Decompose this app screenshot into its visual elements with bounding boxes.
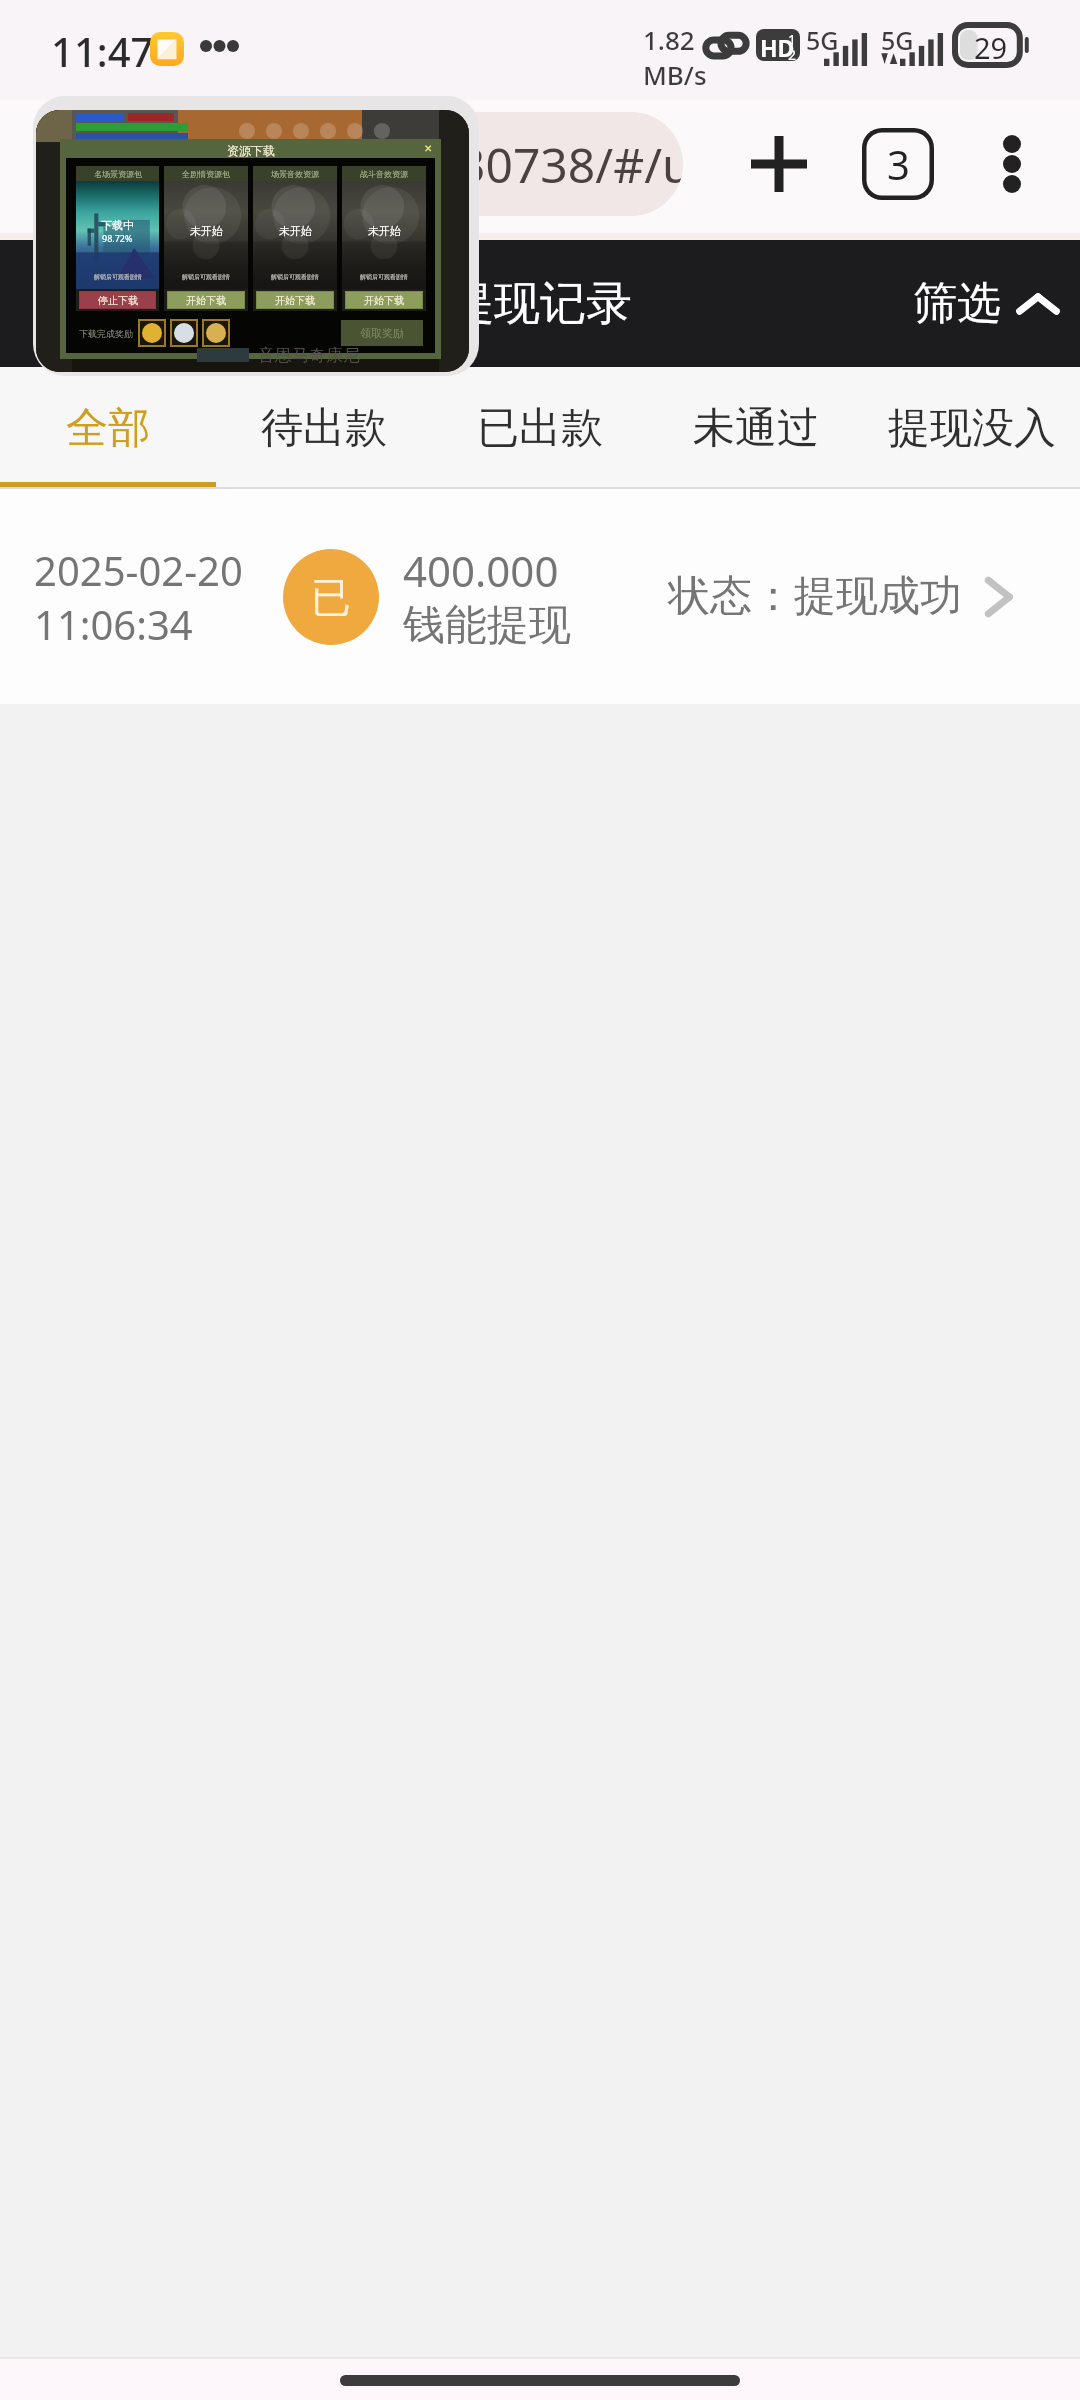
button[interactable]: 2025-02-20 <box>0 489 1080 704</box>
button[interactable]: Floating game window <box>33 96 479 376</box>
staticText: 解锁后可观看剧情 <box>94 273 142 281</box>
staticText: 3 <box>887 137 910 191</box>
staticText: 全部 <box>66 402 150 455</box>
staticText: 钱能提现 <box>403 599 571 652</box>
button[interactable]: 全部 <box>0 367 216 489</box>
staticText: 音恩马奇康尼 <box>258 345 360 366</box>
button[interactable]: 已出款 <box>432 367 648 489</box>
staticText: 待出款 <box>261 402 387 455</box>
staticText: HD <box>760 32 795 63</box>
staticText: 解锁后可观看剧情 <box>271 273 319 281</box>
staticText: 1.82 <box>643 22 695 57</box>
staticText: 筛选 <box>913 276 1001 331</box>
staticText: 1 <box>788 30 797 49</box>
staticText: 名场景资源包 <box>94 169 142 179</box>
staticText: 未开始 <box>190 224 223 238</box>
staticText: 已 <box>311 572 351 622</box>
staticText: 11:06:34 <box>34 597 193 651</box>
button[interactable]: New tab <box>735 120 823 208</box>
staticText: 状态：提现成功 <box>668 570 962 623</box>
staticText: 资源下载 <box>227 143 275 158</box>
staticText: 战斗音效资源 <box>360 169 408 179</box>
staticText: 2025-02-20 <box>34 543 243 597</box>
button[interactable]: 30738/#/u <box>90 112 683 216</box>
staticText: 30738/#/u <box>458 132 683 197</box>
staticText: 解锁后可观看剧情 <box>360 273 408 281</box>
staticText: 5G <box>881 23 914 57</box>
staticText: 开始下载 <box>364 294 404 307</box>
staticText: 400.000 <box>403 542 559 599</box>
staticText: 98.72% <box>102 232 133 244</box>
staticText: 提现记录 <box>448 275 632 333</box>
staticText: 29 <box>974 28 1008 67</box>
staticText: 提现没入 <box>888 402 1056 455</box>
staticText: MB/s <box>643 57 707 92</box>
button[interactable]: 提现没入 <box>864 367 1080 489</box>
staticText: 开始下载 <box>186 294 226 307</box>
button[interactable]: 筛选 <box>907 266 1064 341</box>
staticText: 开始下载 <box>275 294 315 307</box>
staticText: 场景音效资源 <box>271 169 319 179</box>
button[interactable]: More options <box>968 120 1056 208</box>
staticText: 已出款 <box>477 402 603 455</box>
staticText: 停止下载 <box>98 294 138 307</box>
staticText: 未通过 <box>693 402 819 455</box>
staticText: 领取奖励 <box>360 326 404 340</box>
button[interactable]: 未通过 <box>648 367 864 489</box>
staticText: 解锁后可观看剧情 <box>182 273 230 281</box>
staticText: 下载中 <box>101 218 134 232</box>
button[interactable]: 待出款 <box>216 367 432 489</box>
staticText: 下载完成奖励 <box>79 328 133 339</box>
staticText: ✕ <box>424 143 433 155</box>
button[interactable]: Tabs <box>858 124 938 204</box>
staticText: 未开始 <box>368 224 401 238</box>
staticText: 2 <box>788 45 797 64</box>
staticText: 全剧情资源包 <box>182 169 230 179</box>
staticText: 未开始 <box>279 224 312 238</box>
staticText: 5G <box>806 23 839 57</box>
staticText: 11:47 <box>51 24 154 78</box>
